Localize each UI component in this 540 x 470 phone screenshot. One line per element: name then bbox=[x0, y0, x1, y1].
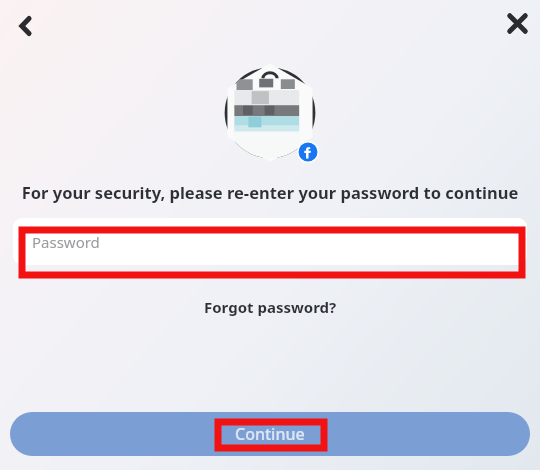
button[interactable]: Continue bbox=[10, 412, 530, 456]
button[interactable]: Forgot password? bbox=[196, 293, 345, 321]
staticText: Password bbox=[32, 232, 100, 252]
button[interactable]: Close bbox=[495, 1, 539, 45]
button[interactable]: Back bbox=[4, 4, 48, 48]
staticText: Continue bbox=[235, 423, 305, 445]
button[interactable]: Password bbox=[13, 218, 527, 265]
staticText: Forgot password? bbox=[204, 297, 337, 317]
staticText: For your security, please re-enter your … bbox=[12, 181, 528, 203]
